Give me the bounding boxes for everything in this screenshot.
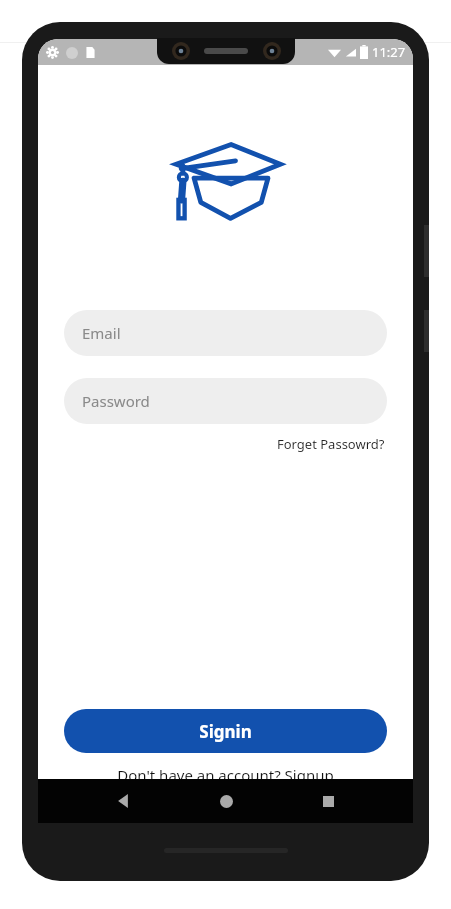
- button[interactable]: Forget Passowrd?: [275, 432, 387, 456]
- button[interactable]: Home: [209, 784, 243, 818]
- staticText: 11:27: [372, 43, 406, 61]
- button[interactable]: Email: [64, 310, 387, 356]
- button[interactable]: Recent apps: [311, 784, 345, 818]
- staticText: Don't have an account? Signup: [117, 765, 334, 785]
- staticText: Forget Passowrd?: [277, 435, 385, 453]
- button[interactable]: Back: [106, 784, 140, 818]
- staticText: Email: [82, 323, 121, 343]
- button[interactable]: Don't have an account? Signup: [111, 763, 340, 787]
- button[interactable]: Password: [64, 378, 387, 424]
- button[interactable]: Signin: [64, 709, 387, 753]
- other: App logo: [170, 140, 282, 222]
- staticText: Password: [82, 391, 150, 411]
- staticText: Signin: [199, 720, 252, 743]
